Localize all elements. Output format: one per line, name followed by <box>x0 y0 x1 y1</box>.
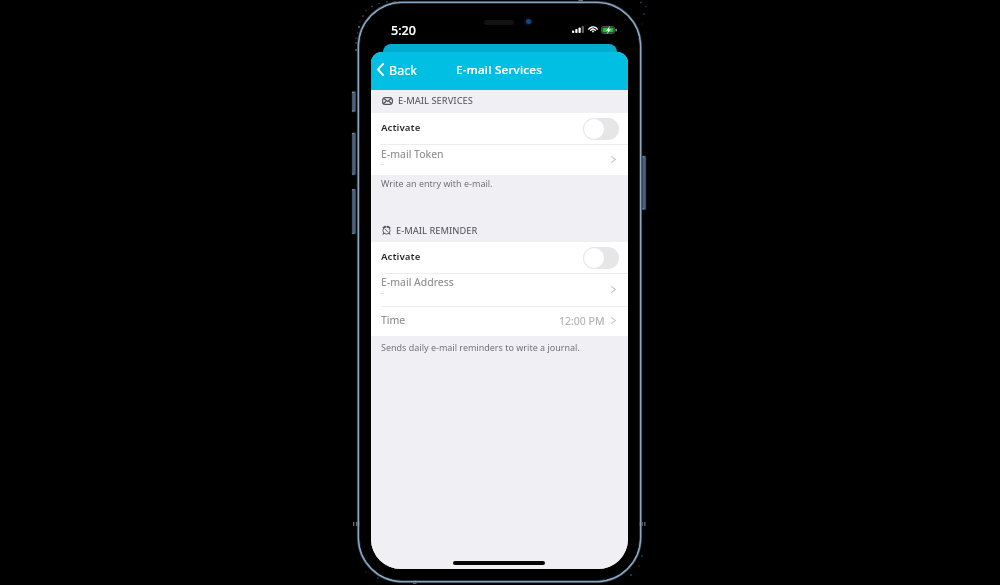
staticText: Write an entry with e-mail. <box>381 177 493 189</box>
staticText: 5:20 <box>391 22 416 39</box>
staticText: 12:00 PM <box>559 314 605 328</box>
staticText: - <box>381 287 384 297</box>
staticText: Back <box>389 62 417 79</box>
staticText: Activate <box>381 121 421 134</box>
button[interactable]: E-mail Address <box>371 274 628 306</box>
button[interactable]: Activate <box>371 242 628 273</box>
staticText: Sends daily e-mail reminders to write a … <box>381 341 580 353</box>
staticText: - <box>381 158 384 168</box>
staticText: Time <box>381 313 406 327</box>
staticText: E-mail Token <box>381 147 444 161</box>
staticText: E-mail Services <box>456 62 543 78</box>
button[interactable]: Time <box>371 307 628 336</box>
staticText: E-MAIL SERVICES <box>398 94 473 107</box>
button[interactable]: Back <box>372 58 425 85</box>
button[interactable]: Activate <box>371 113 628 144</box>
staticText: Activate <box>381 250 421 263</box>
button[interactable]: E-mail Token <box>371 145 628 175</box>
staticText: E-mail Address <box>381 275 454 289</box>
staticText: E-MAIL REMINDER <box>396 224 478 237</box>
